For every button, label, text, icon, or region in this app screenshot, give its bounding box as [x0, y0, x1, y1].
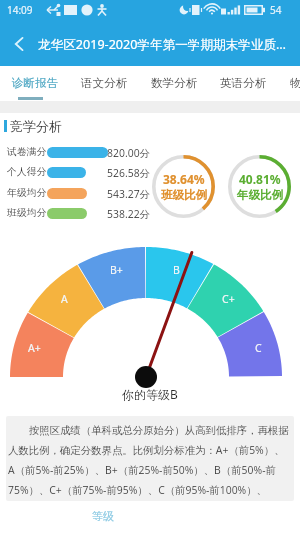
- button[interactable]: 语文分析: [69, 66, 138, 101]
- staticText: 820.00分: [90, 146, 150, 160]
- staticText: 试卷满分: [7, 146, 47, 158]
- staticText: 38.64%: [163, 171, 205, 187]
- staticText: 40.81%: [239, 171, 281, 187]
- staticText: 个人得分: [7, 166, 47, 178]
- staticText: A+: [28, 341, 41, 355]
- button[interactable]: 诊断报告: [0, 66, 69, 101]
- staticText: 班级均分: [7, 207, 47, 219]
- staticText: 54: [270, 3, 282, 17]
- staticText: 等级: [92, 509, 114, 523]
- staticText: 诊断报告: [12, 76, 59, 91]
- staticText: A: [61, 292, 68, 306]
- button[interactable]: 数学分析: [139, 66, 208, 101]
- staticText: 543.27分: [90, 187, 150, 201]
- staticText: 竞学分析: [10, 118, 62, 134]
- staticText: C+: [222, 292, 235, 306]
- button[interactable]: 英语分析: [208, 66, 277, 101]
- staticText: 按照区成绩（单科或总分原始分）从高到低排序，再根据 人数比例，确定分数界点。比例…: [8, 423, 289, 498]
- staticText: 538.22分: [90, 207, 150, 221]
- staticText: 英语分析: [220, 76, 267, 91]
- button[interactable]: Back: [0, 24, 38, 64]
- staticText: B+: [110, 263, 123, 277]
- staticText: 年级比例: [237, 188, 283, 202]
- button[interactable]: 物: [278, 66, 300, 101]
- staticText: 年级均分: [7, 187, 47, 199]
- staticText: B: [173, 263, 180, 277]
- staticText: 语文分析: [81, 76, 128, 91]
- staticText: 物: [290, 76, 300, 91]
- staticText: 班级比例: [161, 188, 207, 202]
- staticText: 14:09: [7, 3, 33, 17]
- staticText: C: [255, 341, 262, 355]
- button[interactable]: 等级: [88, 507, 118, 525]
- staticText: 龙华区2019-2020学年第一学期期末学业质…: [38, 36, 286, 53]
- staticText: 你的等级B: [122, 386, 178, 402]
- staticText: 526.58分: [90, 166, 150, 180]
- staticText: 数学分析: [151, 76, 198, 91]
